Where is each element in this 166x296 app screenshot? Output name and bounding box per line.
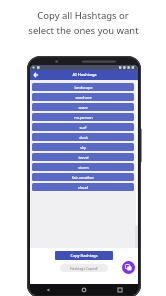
staticText: cloud bbox=[78, 185, 88, 190]
staticText: seashore bbox=[75, 95, 92, 100]
button[interactable]: Recents bbox=[116, 286, 124, 294]
staticText: AI Hashtags bbox=[72, 72, 97, 78]
button[interactable]: sky bbox=[32, 143, 134, 151]
staticText: storm bbox=[78, 165, 89, 170]
button[interactable]: Home bbox=[80, 286, 88, 294]
staticText: sky bbox=[80, 145, 86, 150]
staticText: Hashtags Copied! bbox=[70, 266, 98, 271]
staticText: fair-weather bbox=[72, 175, 94, 180]
staticText: travel bbox=[78, 155, 89, 160]
button[interactable]: storm bbox=[32, 163, 134, 171]
staticText: no-person bbox=[74, 115, 93, 120]
button[interactable]: Copy bbox=[122, 261, 135, 274]
button[interactable]: Copy Hashtags bbox=[55, 251, 113, 260]
staticText: surf bbox=[79, 125, 87, 130]
button[interactable]: seashore bbox=[32, 93, 134, 101]
button[interactable]: fair-weather bbox=[32, 173, 134, 181]
staticText: Copy all Hashtags or bbox=[37, 9, 129, 22]
staticText: Copy Hashtags bbox=[70, 253, 98, 258]
button[interactable]: landscape bbox=[32, 83, 134, 91]
button[interactable]: wave bbox=[32, 103, 134, 111]
staticText: select the ones you want bbox=[28, 24, 139, 37]
button[interactable]: no-person bbox=[32, 113, 134, 121]
button[interactable]: Back bbox=[44, 286, 52, 294]
button[interactable]: dusk bbox=[32, 133, 134, 141]
button[interactable]: surf bbox=[32, 123, 134, 131]
staticText: dusk bbox=[79, 135, 88, 140]
button[interactable]: Back bbox=[31, 70, 41, 80]
button[interactable]: travel bbox=[32, 153, 134, 161]
button[interactable]: cloud bbox=[32, 183, 134, 191]
staticText: landscape bbox=[74, 85, 93, 90]
staticText: wave bbox=[78, 105, 88, 110]
